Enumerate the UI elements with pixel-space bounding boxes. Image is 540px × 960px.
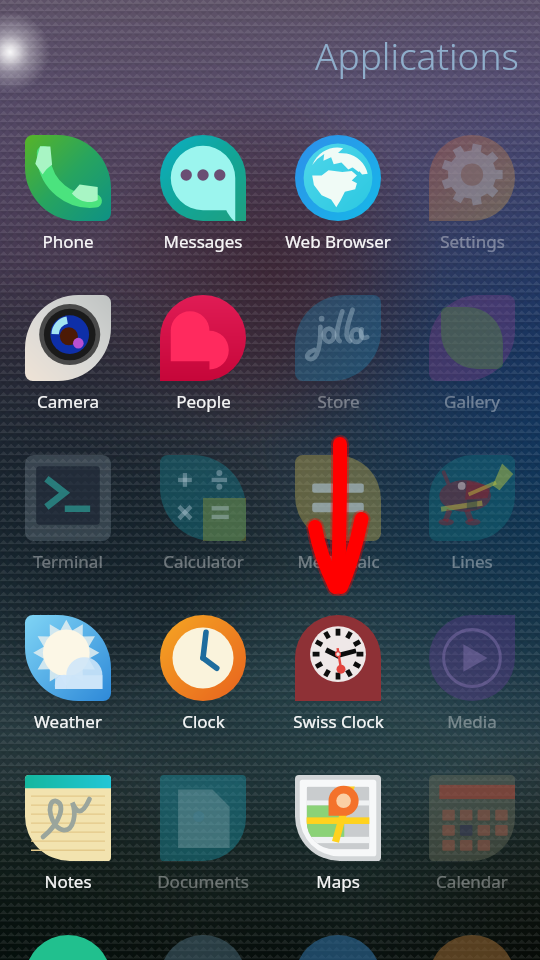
- staticText: Camera: [37, 390, 99, 413]
- button[interactable]: Clock: [139, 708, 267, 734]
- button[interactable]: Maps: [274, 868, 402, 894]
- button[interactable]: Messages: [139, 228, 267, 254]
- staticText: Phone: [42, 230, 94, 253]
- button[interactable]: Notes: [4, 868, 132, 894]
- staticText: Maps: [316, 870, 360, 893]
- button[interactable]: Gallery: [408, 388, 536, 414]
- button[interactable]: Terminal: [4, 548, 132, 574]
- staticText: Gallery: [444, 390, 500, 413]
- staticText: Documents: [157, 870, 249, 893]
- button[interactable]: Lines: [408, 548, 536, 574]
- button[interactable]: Camera: [4, 388, 132, 414]
- button[interactable]: Phone: [4, 228, 132, 254]
- staticText: Applications: [315, 30, 519, 80]
- button[interactable]: People: [139, 388, 267, 414]
- button[interactable]: Documents: [139, 868, 267, 894]
- button[interactable]: Calculator: [139, 548, 267, 574]
- staticText: Swiss Clock: [293, 710, 384, 733]
- button[interactable]: Weather: [4, 708, 132, 734]
- staticText: Weather: [34, 710, 102, 733]
- staticText: Messages: [163, 230, 243, 253]
- staticText: Calculator: [163, 550, 244, 573]
- staticText: Terminal: [33, 550, 103, 573]
- staticText: Calendar: [436, 870, 508, 893]
- button[interactable]: Settings: [408, 228, 536, 254]
- staticText: Web Browser: [285, 230, 391, 253]
- button[interactable]: MediaCalc: [274, 548, 402, 574]
- button[interactable]: Media: [408, 708, 536, 734]
- staticText: Lines: [451, 550, 493, 573]
- staticText: Clock: [182, 710, 225, 733]
- button[interactable]: Web Browser: [274, 228, 402, 254]
- button[interactable]: Calendar: [408, 868, 536, 894]
- staticText: MediaCalc: [297, 550, 380, 573]
- staticText: Store: [317, 390, 360, 413]
- button[interactable]: Store: [274, 388, 402, 414]
- staticText: Notes: [44, 870, 92, 893]
- staticText: Media: [447, 710, 497, 733]
- staticText: Settings: [440, 230, 505, 253]
- staticText: People: [176, 390, 231, 413]
- button[interactable]: Swiss Clock: [274, 708, 402, 734]
